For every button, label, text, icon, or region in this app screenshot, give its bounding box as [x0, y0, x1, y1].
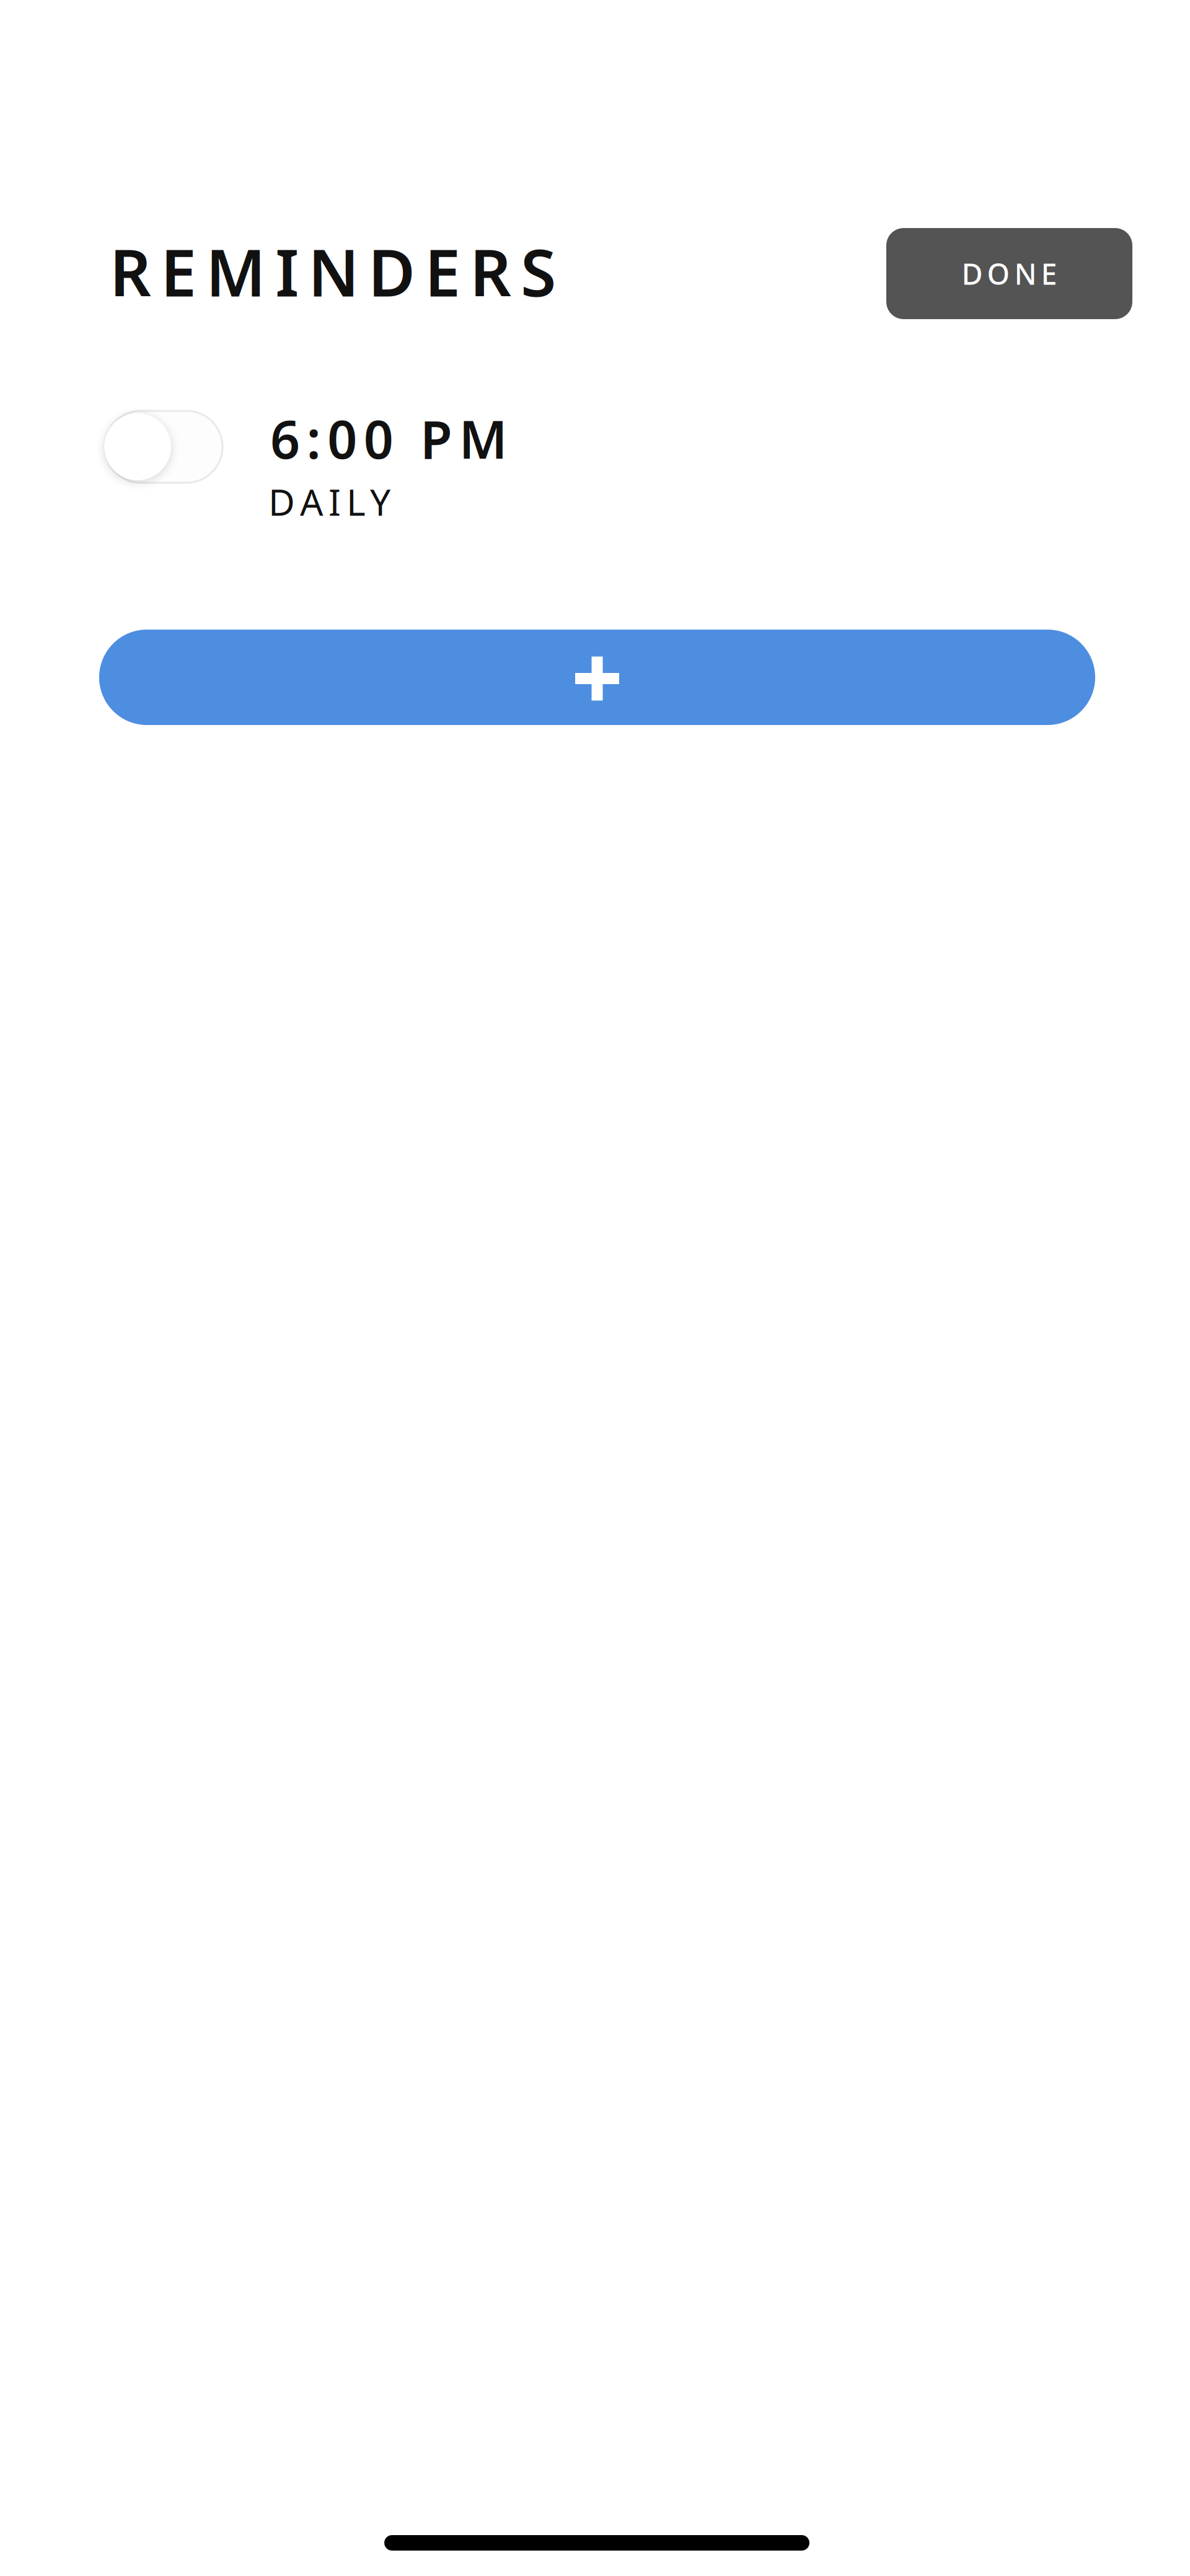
button[interactable]: Add reminder: [99, 630, 1095, 725]
button[interactable]: DONE: [886, 228, 1132, 319]
staticText: DONE: [962, 254, 1057, 293]
staticText: DAILY: [268, 477, 390, 526]
staticText: 6:00 PM: [270, 404, 507, 473]
staticText: REMINDERS: [110, 229, 556, 314]
button[interactable]: Reminder enabled: [105, 411, 223, 483]
button[interactable]: 6:00 PM: [270, 404, 507, 521]
